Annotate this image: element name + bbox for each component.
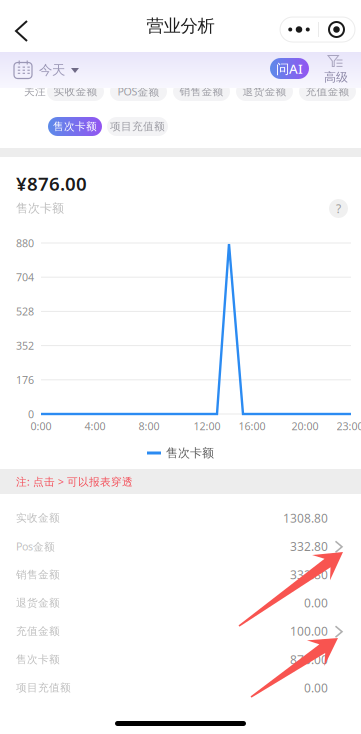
- button[interactable]: 关注: [20, 82, 50, 101]
- staticText: 16:00: [238, 419, 265, 433]
- staticText: 100.00: [290, 623, 328, 639]
- staticText: 高级: [324, 70, 348, 85]
- button[interactable]: 充值金额: [0, 617, 361, 645]
- staticText: 销售金额: [16, 568, 60, 581]
- button[interactable]: 项目充值额: [0, 674, 361, 702]
- button[interactable]: 充值金额: [299, 82, 356, 101]
- staticText: 注: 点击 > 可以报表穿透: [16, 474, 133, 489]
- staticText: 1308.80: [283, 510, 328, 526]
- staticText: 704: [16, 270, 34, 284]
- staticText: 0: [28, 407, 34, 421]
- staticText: 实收金额: [16, 511, 60, 524]
- button[interactable]: 退货金额: [0, 589, 361, 617]
- staticText: 售次卡额: [53, 120, 97, 133]
- button[interactable]: 高级: [318, 54, 354, 85]
- staticText: 营业分析: [146, 15, 214, 37]
- staticText: 今天: [39, 62, 65, 78]
- staticText: 23:00: [336, 419, 361, 433]
- staticText: 问AI: [276, 60, 303, 77]
- staticText: 关注: [24, 85, 46, 98]
- button[interactable]: 销售金额: [173, 82, 230, 101]
- staticText: 实收金额: [53, 85, 97, 98]
- button[interactable]: 退货金额: [236, 82, 293, 101]
- staticText: 0.00: [304, 680, 328, 696]
- staticText: Pos金额: [16, 539, 55, 553]
- staticText: 售次卡额: [16, 201, 64, 216]
- staticText: 332.80: [290, 567, 328, 582]
- button[interactable]: Pos金额: [0, 532, 361, 560]
- staticText: 销售金额: [179, 85, 223, 98]
- button[interactable]: 项目充值额: [107, 117, 168, 136]
- staticText: 售次卡额: [166, 446, 214, 460]
- button[interactable]: More: [280, 17, 355, 42]
- staticText: 176: [16, 373, 34, 387]
- staticText: 退货金额: [242, 85, 286, 98]
- staticText: 充值金额: [16, 625, 60, 638]
- staticText: 352: [16, 338, 34, 353]
- staticText: 售次卡额: [16, 653, 60, 666]
- staticText: 332.80: [290, 538, 328, 554]
- button[interactable]: 售次卡额: [48, 117, 102, 136]
- button[interactable]: 实收金额: [0, 504, 361, 532]
- button[interactable]: POS金额: [110, 82, 167, 101]
- staticText: POS金额: [117, 84, 159, 99]
- staticText: 8:00: [138, 419, 159, 433]
- button[interactable]: Help: [329, 199, 348, 218]
- staticText: 528: [16, 304, 34, 318]
- button[interactable]: 实收金额: [47, 82, 104, 101]
- staticText: 退货金额: [16, 596, 60, 609]
- button[interactable]: Back: [0, 9, 44, 53]
- staticText: 20:00: [291, 419, 318, 433]
- button[interactable]: 问AI: [270, 58, 309, 79]
- staticText: ¥876.00: [16, 171, 87, 196]
- staticText: 880: [16, 236, 34, 250]
- staticText: ?: [336, 200, 341, 216]
- button[interactable]: 今天: [0, 52, 80, 88]
- button[interactable]: 销售金额: [0, 561, 361, 589]
- button[interactable]: 售次卡额: [0, 645, 361, 673]
- staticText: 项目充值额: [16, 681, 71, 694]
- staticText: 4:00: [84, 419, 105, 433]
- staticText: 876.00: [290, 651, 328, 667]
- staticText: 项目充值额: [110, 120, 165, 133]
- staticText: 充值金额: [305, 85, 349, 98]
- staticText: 0.00: [304, 595, 328, 611]
- staticText: 0:00: [30, 419, 51, 433]
- staticText: 12:00: [193, 419, 220, 433]
